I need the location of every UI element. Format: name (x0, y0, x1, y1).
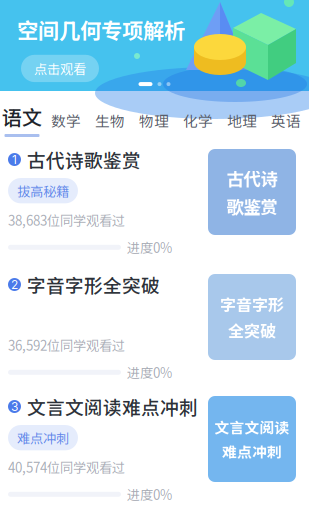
staticText: 古代诗 (226, 165, 277, 190)
staticText: 全突破 (228, 318, 276, 342)
button[interactable]: 空间几何专项解析 (0, 0, 309, 91)
button[interactable]: 2 (0, 262, 309, 384)
staticText: 40,574位同学观看过 (8, 457, 125, 477)
staticText: 文言文阅读 (214, 416, 289, 437)
staticText: 歌鉴赏 (226, 193, 277, 219)
staticText: 字音字形 (220, 292, 284, 315)
button[interactable]: 英语 (264, 110, 308, 137)
staticText: 进度0% (127, 363, 172, 382)
staticText: 英语 (271, 110, 301, 131)
button[interactable]: 地理 (220, 110, 264, 137)
staticText: 物理 (139, 110, 169, 131)
staticText: 36,592位同学观看过 (8, 335, 125, 355)
staticText: 进度0% (127, 238, 172, 257)
button[interactable]: 3 (0, 384, 309, 508)
button[interactable]: 1 (0, 137, 309, 262)
staticText: 空间几何专项解析 (17, 14, 185, 45)
button[interactable]: 化学 (176, 110, 220, 137)
staticText: 文言文阅读难点冲刺 (27, 393, 198, 420)
staticText: 古代诗歌鉴赏 (27, 146, 141, 173)
staticText: 难点冲刺 (222, 440, 282, 462)
staticText: 1 (12, 152, 17, 167)
staticText: 38,683位同学观看过 (8, 210, 125, 230)
staticText: 语文 (2, 102, 42, 131)
button[interactable]: 语文 (0, 102, 44, 137)
staticText: 点击观看 (34, 59, 86, 78)
button[interactable]: 物理 (132, 110, 176, 137)
staticText: 化学 (183, 110, 213, 131)
staticText: 拔高秘籍 (17, 181, 69, 200)
staticText: 难点冲刺 (17, 428, 69, 447)
staticText: 数学 (51, 110, 81, 131)
staticText: 进度0% (127, 485, 172, 504)
staticText: 生物 (95, 110, 125, 131)
staticText: 字音字形全突破 (27, 271, 160, 298)
staticText: 地理 (227, 110, 257, 131)
staticText: 3 (11, 399, 18, 414)
button[interactable]: 数学 (44, 110, 88, 137)
button[interactable]: 生物 (88, 110, 132, 137)
staticText: 2 (11, 277, 18, 292)
